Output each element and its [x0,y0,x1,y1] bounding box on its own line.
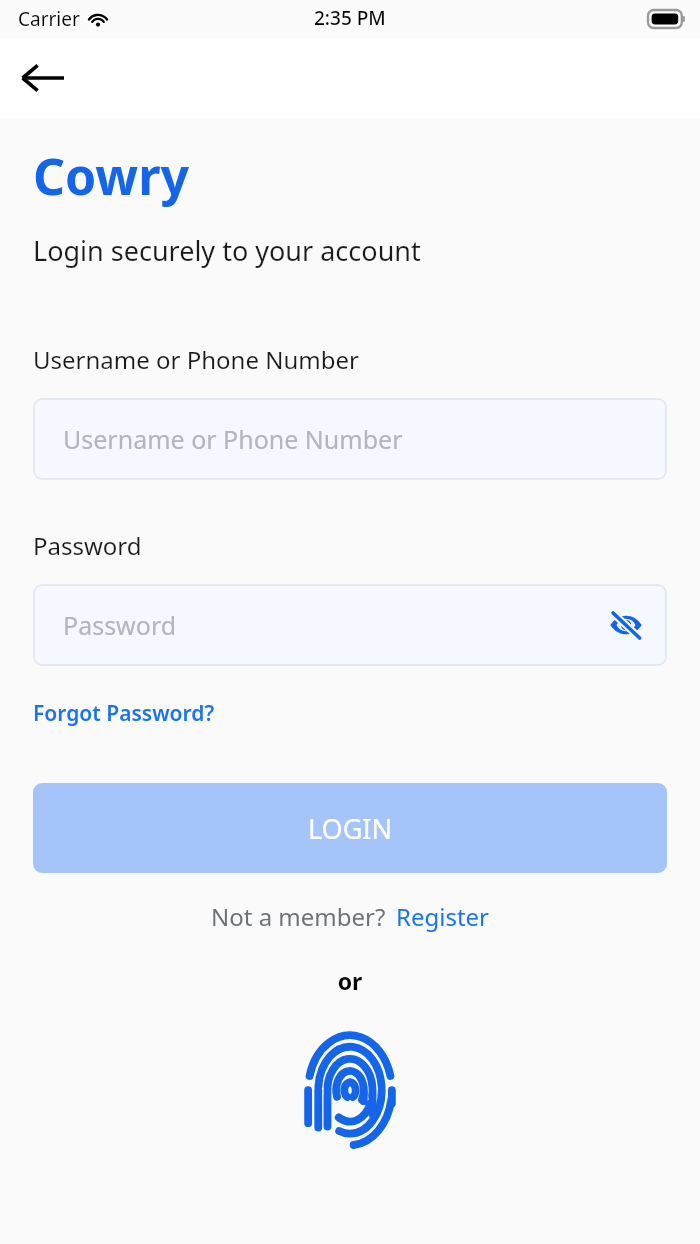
staticText: Username or Phone Number [63,422,403,456]
staticText: Login securely to your account [33,232,421,269]
staticText: Carrier [18,6,80,32]
button[interactable]: Show password [603,602,649,648]
staticText: Password [63,608,177,642]
button[interactable]: Password [33,584,667,666]
button[interactable]: Back [14,50,70,106]
staticText: Not a member? [211,900,386,933]
staticText: 2:35 PM [314,5,386,31]
button[interactable]: Forgot Password? [33,699,215,728]
button[interactable]: Register [396,900,490,933]
button[interactable]: LOGIN [33,783,667,873]
staticText: Cowry [33,142,190,210]
button[interactable]: Login with fingerprint [304,1022,396,1132]
staticText: Forgot Password? [33,699,215,728]
staticText: Password [33,529,142,562]
staticText: Register [396,900,490,933]
button[interactable]: Username or Phone Number [33,398,667,480]
staticText: or [33,965,667,996]
staticText: Username or Phone Number [33,343,359,376]
staticText: LOGIN [308,810,393,847]
